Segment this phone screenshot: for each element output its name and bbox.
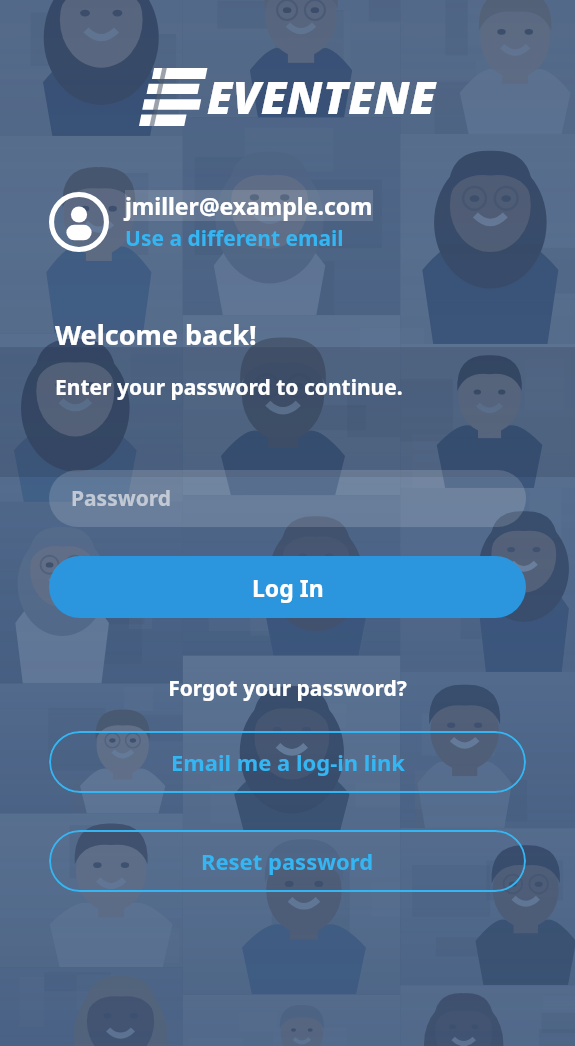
staticText: Enter your password to continue. <box>55 373 403 402</box>
staticText: EVENTENE <box>207 66 436 127</box>
button[interactable]: Password <box>49 470 526 527</box>
button[interactable]: Forgot your password? <box>168 674 407 703</box>
button[interactable]: jmiller@example.com <box>49 190 575 253</box>
staticText: Email me a log-in link <box>171 747 405 777</box>
staticText: Reset password <box>201 846 374 876</box>
staticText: Log In <box>252 572 324 603</box>
button[interactable]: Reset password <box>49 830 526 892</box>
button[interactable]: Use a different email <box>125 224 344 253</box>
staticText: Welcome back! <box>55 316 257 353</box>
staticText: jmiller@example.com <box>125 190 373 221</box>
button[interactable]: Email me a log-in link <box>49 731 526 793</box>
button[interactable]: Log In <box>49 556 526 618</box>
staticText: Password <box>71 484 172 513</box>
